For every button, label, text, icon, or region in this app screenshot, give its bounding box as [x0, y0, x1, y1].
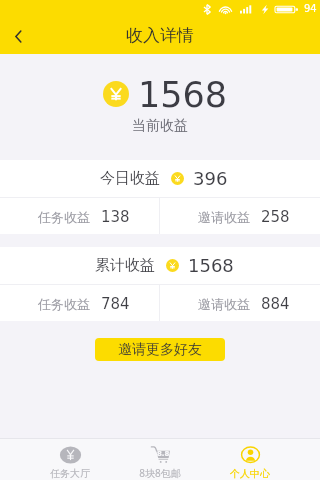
button[interactable]: 任务大厅: [25, 440, 115, 480]
staticText: 收入详情: [126, 25, 194, 46]
staticText: 396: [193, 168, 228, 189]
staticText: 邀请收益: [198, 209, 250, 225]
staticText: 1568: [188, 255, 234, 276]
staticText: 258: [261, 208, 290, 225]
button[interactable]: 邀请更多好友: [95, 338, 225, 361]
staticText: 个人中心: [230, 467, 270, 480]
staticText: 当前收益: [132, 117, 188, 135]
staticText: 94: [304, 3, 317, 15]
staticText: 8.8: [157, 450, 170, 458]
staticText: 邀请更多好友: [118, 341, 202, 359]
staticText: 任务收益: [38, 209, 90, 225]
staticText: 任务大厅: [50, 467, 90, 480]
staticText: 累计收益: [95, 256, 155, 275]
staticText: 任务收益: [38, 296, 90, 312]
staticText: 884: [261, 295, 290, 312]
button[interactable]: Back: [0, 18, 36, 54]
button[interactable]: 8.8: [115, 439, 205, 480]
staticText: 今日收益: [100, 169, 160, 188]
staticText: 8块8包邮: [139, 466, 181, 480]
staticText: 784: [101, 295, 130, 312]
staticText: 邀请收益: [198, 296, 250, 312]
staticText: 138: [101, 208, 130, 225]
staticText: 1568: [138, 75, 228, 116]
button[interactable]: 个人中心: [205, 440, 295, 480]
